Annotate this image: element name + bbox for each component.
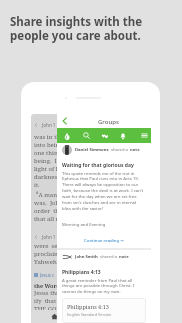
staticText: one thing <box>34 149 62 157</box>
staticText: shared a <box>100 254 119 260</box>
staticText: was, Joh <box>34 199 60 207</box>
staticText: Jesus thro <box>34 289 63 297</box>
button[interactable]: Menu <box>139 130 150 141</box>
staticText: light of h <box>34 165 60 173</box>
staticText: John 1 <box>42 234 56 240</box>
staticText: Groups <box>98 118 119 126</box>
staticText: A great reminder from Paul that all thin… <box>62 277 146 295</box>
staticText: were sent <box>34 242 64 250</box>
button[interactable]: Philippians 4:13 <box>62 298 146 323</box>
staticText: that all m <box>34 215 62 223</box>
button[interactable]: Bible <box>61 130 72 141</box>
button[interactable]: Search <box>81 130 92 141</box>
staticText: into being <box>34 141 63 149</box>
staticText: shared a <box>111 147 130 153</box>
staticText: note <box>119 254 129 260</box>
staticText: being. In <box>34 157 61 165</box>
button[interactable]: Notifications <box>117 130 128 141</box>
staticText: Yahweh f <box>34 258 61 266</box>
button[interactable]: Continue reading → <box>62 237 146 243</box>
button[interactable]: Friends <box>99 130 110 141</box>
staticText: order the <box>34 207 63 215</box>
staticText: ify that " <box>34 297 61 305</box>
staticText: Philippians 4:13 <box>62 269 101 276</box>
staticText: was in the <box>34 133 64 141</box>
staticText: This quote reminds me of the riot in Eph… <box>62 170 146 212</box>
staticText: Morning and Evening <box>62 221 106 227</box>
staticText: Share insights with the people you care … <box>10 14 143 43</box>
staticText: John Smith <box>75 254 98 260</box>
staticText: note <box>130 147 140 153</box>
staticText: Daniel Simmons <box>75 147 109 153</box>
staticText: the Word <box>34 282 60 289</box>
staticText: THE GOSP <box>34 305 64 313</box>
staticText: John 1 <box>42 122 56 128</box>
staticText: darkness, <box>34 173 62 181</box>
staticText: proclaim <box>34 250 60 258</box>
staticText: Jesus c <box>40 272 55 278</box>
staticText: Waiting for that glorious day <box>62 162 134 169</box>
staticText: ⁶A man <box>36 191 58 199</box>
staticText: it. <box>34 181 40 189</box>
staticText: Philippians 4:13 <box>67 303 109 310</box>
staticText: English Standard Version <box>67 312 112 317</box>
staticText: network <box>34 313 59 321</box>
button[interactable]: Back <box>59 114 70 128</box>
